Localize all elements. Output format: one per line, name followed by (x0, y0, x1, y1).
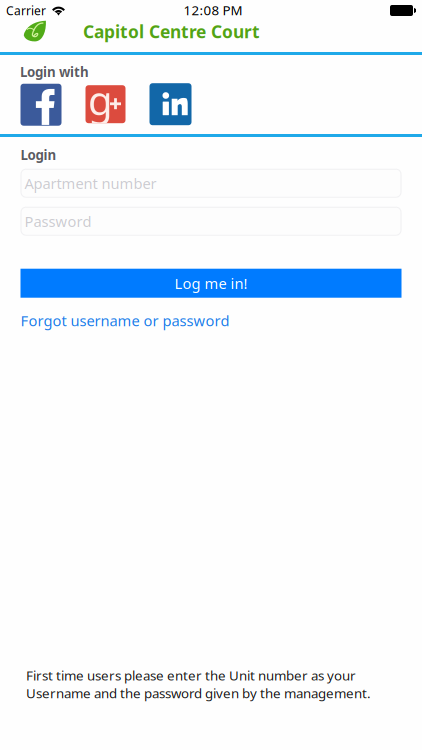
button[interactable]: Forgot username or password (20, 311, 401, 330)
staticText: Capitol Centre Court (83, 20, 260, 43)
button[interactable]: Login with Google Plus (85, 85, 125, 123)
button[interactable]: Log me in! (20, 269, 401, 298)
staticText: First time users please enter the Unit n… (26, 667, 371, 702)
staticText: Password (24, 211, 91, 231)
staticText: 12:08 PM (183, 1, 242, 19)
staticText: Apartment number (24, 173, 156, 193)
staticText: Login with (20, 63, 89, 81)
staticText: Carrier (6, 2, 46, 18)
button[interactable]: Login with Facebook (20, 84, 61, 126)
staticText: Forgot username or password (20, 311, 229, 330)
staticText: g (88, 73, 113, 126)
staticText: Log me in! (174, 273, 247, 293)
button[interactable]: Login with LinkedIn (149, 83, 191, 125)
staticText: Login (20, 146, 56, 164)
